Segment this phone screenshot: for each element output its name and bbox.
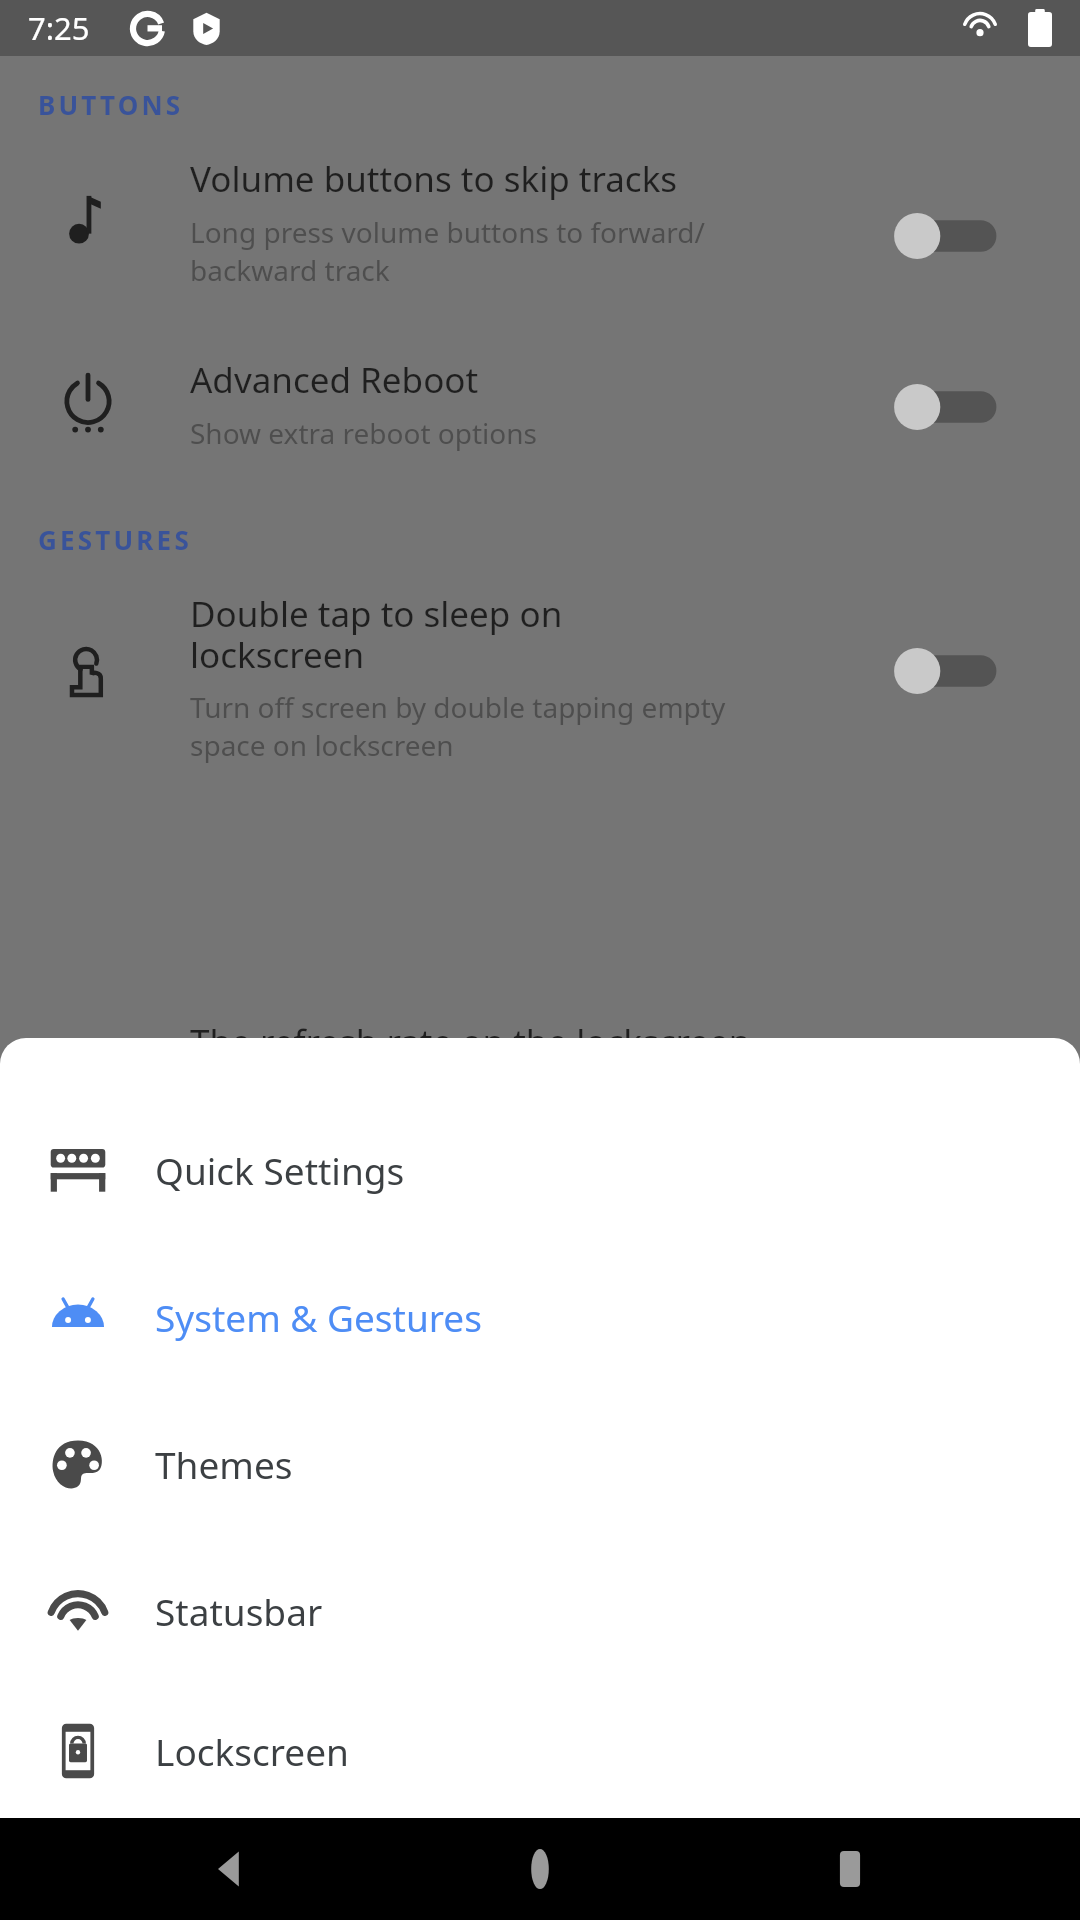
button[interactable]: Lockscreen [0,1684,1080,1818]
staticText: Advanced Reboot [190,356,479,404]
button[interactable] [0,570,1080,760]
button[interactable]: Statusbar [0,1537,1080,1684]
button[interactable] [886,203,1006,269]
button[interactable] [0,135,1080,325]
staticText: The refresh rate on the lockscreen [190,1018,751,1066]
staticText: Show extra reboot options [190,414,537,452]
staticText: System & Gestures [155,1292,482,1342]
button[interactable] [886,374,1006,440]
staticText: backward track [190,251,390,289]
button[interactable] [886,638,1006,704]
button[interactable]: Quick Settings [0,1096,1080,1243]
staticText: Long press volume buttons to forward/ [190,213,705,251]
staticText: GESTURES [38,522,192,557]
staticText: Volume buttons to skip tracks [190,155,678,203]
button[interactable]: Recent apps [810,1829,890,1909]
button[interactable]: System & Gestures [0,1243,1080,1390]
button[interactable]: Back [190,1829,270,1909]
staticText: Turn off screen by double tapping empty [190,688,726,726]
staticText: 7:25 [28,7,90,49]
staticText: space on lockscreen [190,726,454,764]
staticText: Statusbar [155,1586,323,1636]
staticText: Quick Settings [155,1145,405,1195]
button[interactable] [0,336,1080,486]
button[interactable]: Home [500,1829,580,1909]
button[interactable]: Themes [0,1390,1080,1537]
staticText: BUTTONS [38,87,184,122]
staticText: Double tap to sleep on lockscreen [190,590,563,678]
staticText: Lockscreen [155,1726,349,1776]
staticText: Themes [155,1439,293,1489]
